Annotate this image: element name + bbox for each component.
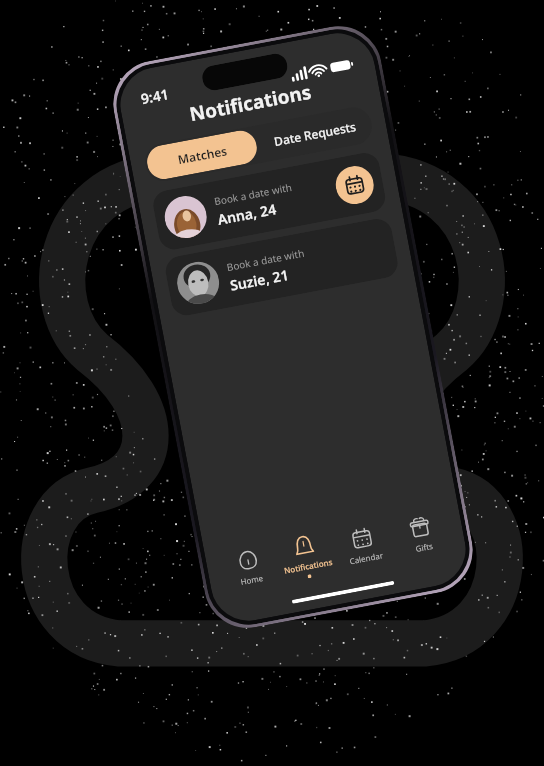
staticText: 9:41: [139, 84, 170, 108]
staticText: Calendar: [348, 549, 384, 566]
button[interactable]: Calendar: [329, 510, 398, 582]
button[interactable]: Notifications: [272, 521, 340, 592]
staticText: Matches: [176, 142, 228, 167]
button[interactable]: Home: [215, 531, 283, 603]
staticText: Gifts: [414, 540, 434, 554]
staticText: Notifications: [187, 79, 314, 127]
staticText: Home: [239, 572, 264, 587]
button[interactable]: Matches: [144, 128, 260, 182]
staticText: Book a date with: [213, 180, 293, 208]
button[interactable]: Gifts: [387, 499, 456, 571]
staticText: Suzie, 21: [228, 265, 291, 295]
staticText: Anna, 24: [216, 199, 278, 229]
staticText: Notifications: [283, 556, 333, 576]
staticText: Book a date with: [225, 246, 306, 274]
staticText: Date Requests: [273, 118, 357, 149]
button[interactable]: Book a date: [332, 163, 377, 207]
button[interactable]: Book a date with: [151, 150, 388, 252]
button[interactable]: Book a date with: [163, 216, 400, 318]
button[interactable]: Date Requests: [255, 104, 375, 163]
